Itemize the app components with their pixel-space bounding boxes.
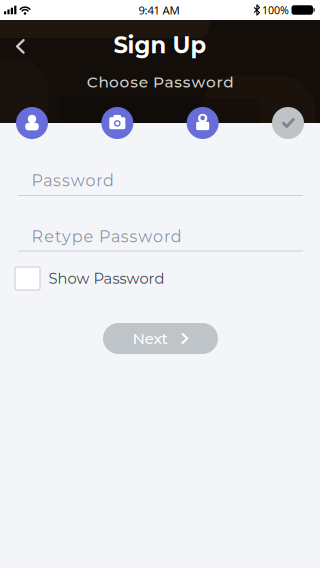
staticText: Show Password (48, 270, 164, 287)
button[interactable]: Password (31, 168, 316, 192)
button[interactable]: Retype Password (31, 224, 316, 248)
staticText: 9:41 AM (138, 2, 179, 18)
staticText: 100% (262, 3, 289, 17)
staticText: Password (31, 171, 114, 190)
button[interactable]: Back (7, 31, 33, 62)
staticText: Choose Password (87, 73, 233, 91)
staticText: Retype Password (31, 227, 182, 246)
staticText: Sign Up (113, 31, 206, 59)
button[interactable]: Show Password (15, 264, 195, 292)
button[interactable]: Next (103, 323, 218, 354)
staticText: Next (132, 329, 167, 348)
